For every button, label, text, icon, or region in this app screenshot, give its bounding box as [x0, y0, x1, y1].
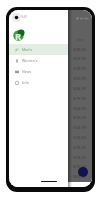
staticText: $64.95	[73, 106, 87, 112]
staticText: Men's	[22, 47, 32, 52]
button[interactable]: $79	[9, 64, 92, 74]
staticText: $69.95	[73, 56, 87, 62]
staticText: $59.99	[73, 76, 87, 82]
button[interactable]: $79.95	[9, 94, 92, 104]
staticText: Info	[22, 80, 29, 85]
button[interactable]: $75.20	[9, 162, 92, 172]
button[interactable]: $70.25	[9, 143, 92, 153]
staticText: $79.95	[73, 96, 87, 102]
staticText: $70.25	[73, 145, 87, 151]
button[interactable]: $99	[9, 123, 92, 133]
staticText: $74.50	[73, 135, 87, 141]
button[interactable]: News	[9, 66, 68, 77]
button[interactable]: $62.40	[9, 172, 92, 182]
button[interactable]: $89	[9, 54, 92, 64]
staticText: $49.95	[73, 47, 87, 53]
button[interactable]: $49.95	[9, 45, 92, 55]
button[interactable]: Men's	[9, 44, 68, 55]
staticText: $34.99	[73, 125, 87, 131]
button[interactable]: Women's	[9, 55, 68, 66]
button[interactable]: $52.00	[9, 113, 92, 123]
button[interactable]: Add to cart	[78, 167, 88, 177]
button[interactable]: $59.99	[9, 74, 92, 84]
staticText: News	[22, 69, 32, 74]
staticText: $52.00	[73, 115, 87, 121]
staticText: $75.20	[73, 164, 87, 170]
staticText: $62.40	[73, 174, 87, 180]
button[interactable]: $64.95	[9, 104, 92, 114]
button[interactable]: $74.25	[9, 153, 92, 163]
staticText: $39.99	[73, 66, 87, 72]
staticText: Women's	[22, 58, 38, 63]
button[interactable]: $88	[9, 133, 92, 143]
staticText: R	[15, 30, 22, 41]
button[interactable]: Info	[9, 77, 68, 88]
staticText: $44.95	[73, 86, 87, 92]
button[interactable]: $44.95	[9, 84, 92, 94]
staticText: New	[77, 37, 85, 42]
staticText: $74.25	[73, 155, 87, 161]
staticText: 9:41	[21, 15, 28, 19]
